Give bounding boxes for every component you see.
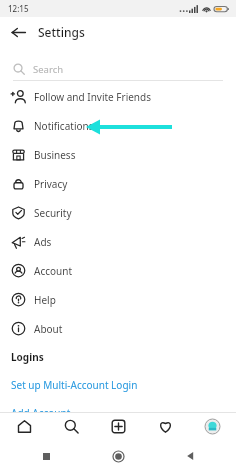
button[interactable]: Notifications — [0, 111, 236, 140]
button[interactable]: Create — [95, 413, 142, 440]
staticText: Notifications — [34, 119, 94, 133]
staticText: Set up Multi-Account Login — [11, 378, 138, 392]
button[interactable]: Recents — [36, 446, 56, 466]
button[interactable]: Privacy — [0, 169, 236, 198]
staticText: Privacy — [34, 177, 68, 191]
button[interactable]: Set up Multi-Account Login — [0, 371, 236, 399]
button[interactable]: Back — [4, 18, 32, 46]
button[interactable]: Help — [0, 285, 236, 314]
staticText: About — [34, 322, 63, 336]
staticText: Follow and Invite Friends — [34, 90, 151, 104]
button[interactable]: Back — [180, 446, 200, 466]
button[interactable]: Account — [0, 256, 236, 285]
button[interactable]: Activity — [142, 413, 189, 440]
button[interactable]: Ads — [0, 227, 236, 256]
staticText: Ads — [34, 235, 52, 249]
staticText: Search — [33, 63, 64, 76]
button[interactable]: About — [0, 314, 236, 343]
button[interactable]: Business — [0, 140, 236, 169]
button[interactable]: Search — [0, 57, 236, 81]
button[interactable]: Follow and Invite Friends — [0, 82, 236, 111]
button[interactable]: Home — [108, 446, 128, 466]
staticText: Settings — [38, 24, 85, 40]
staticText: 12:15 — [8, 3, 29, 14]
staticText: Add Account — [11, 406, 71, 420]
staticText: Business — [34, 148, 76, 162]
staticText: Help — [34, 293, 56, 307]
staticText: Account — [34, 264, 73, 278]
button[interactable]: Home — [0, 413, 48, 440]
button[interactable]: Search — [48, 413, 95, 440]
button[interactable]: Profile — [189, 413, 236, 440]
staticText: Logins — [11, 350, 44, 364]
button[interactable]: Security — [0, 198, 236, 227]
staticText: Security — [34, 206, 72, 220]
button[interactable]: Add Account — [0, 399, 236, 427]
